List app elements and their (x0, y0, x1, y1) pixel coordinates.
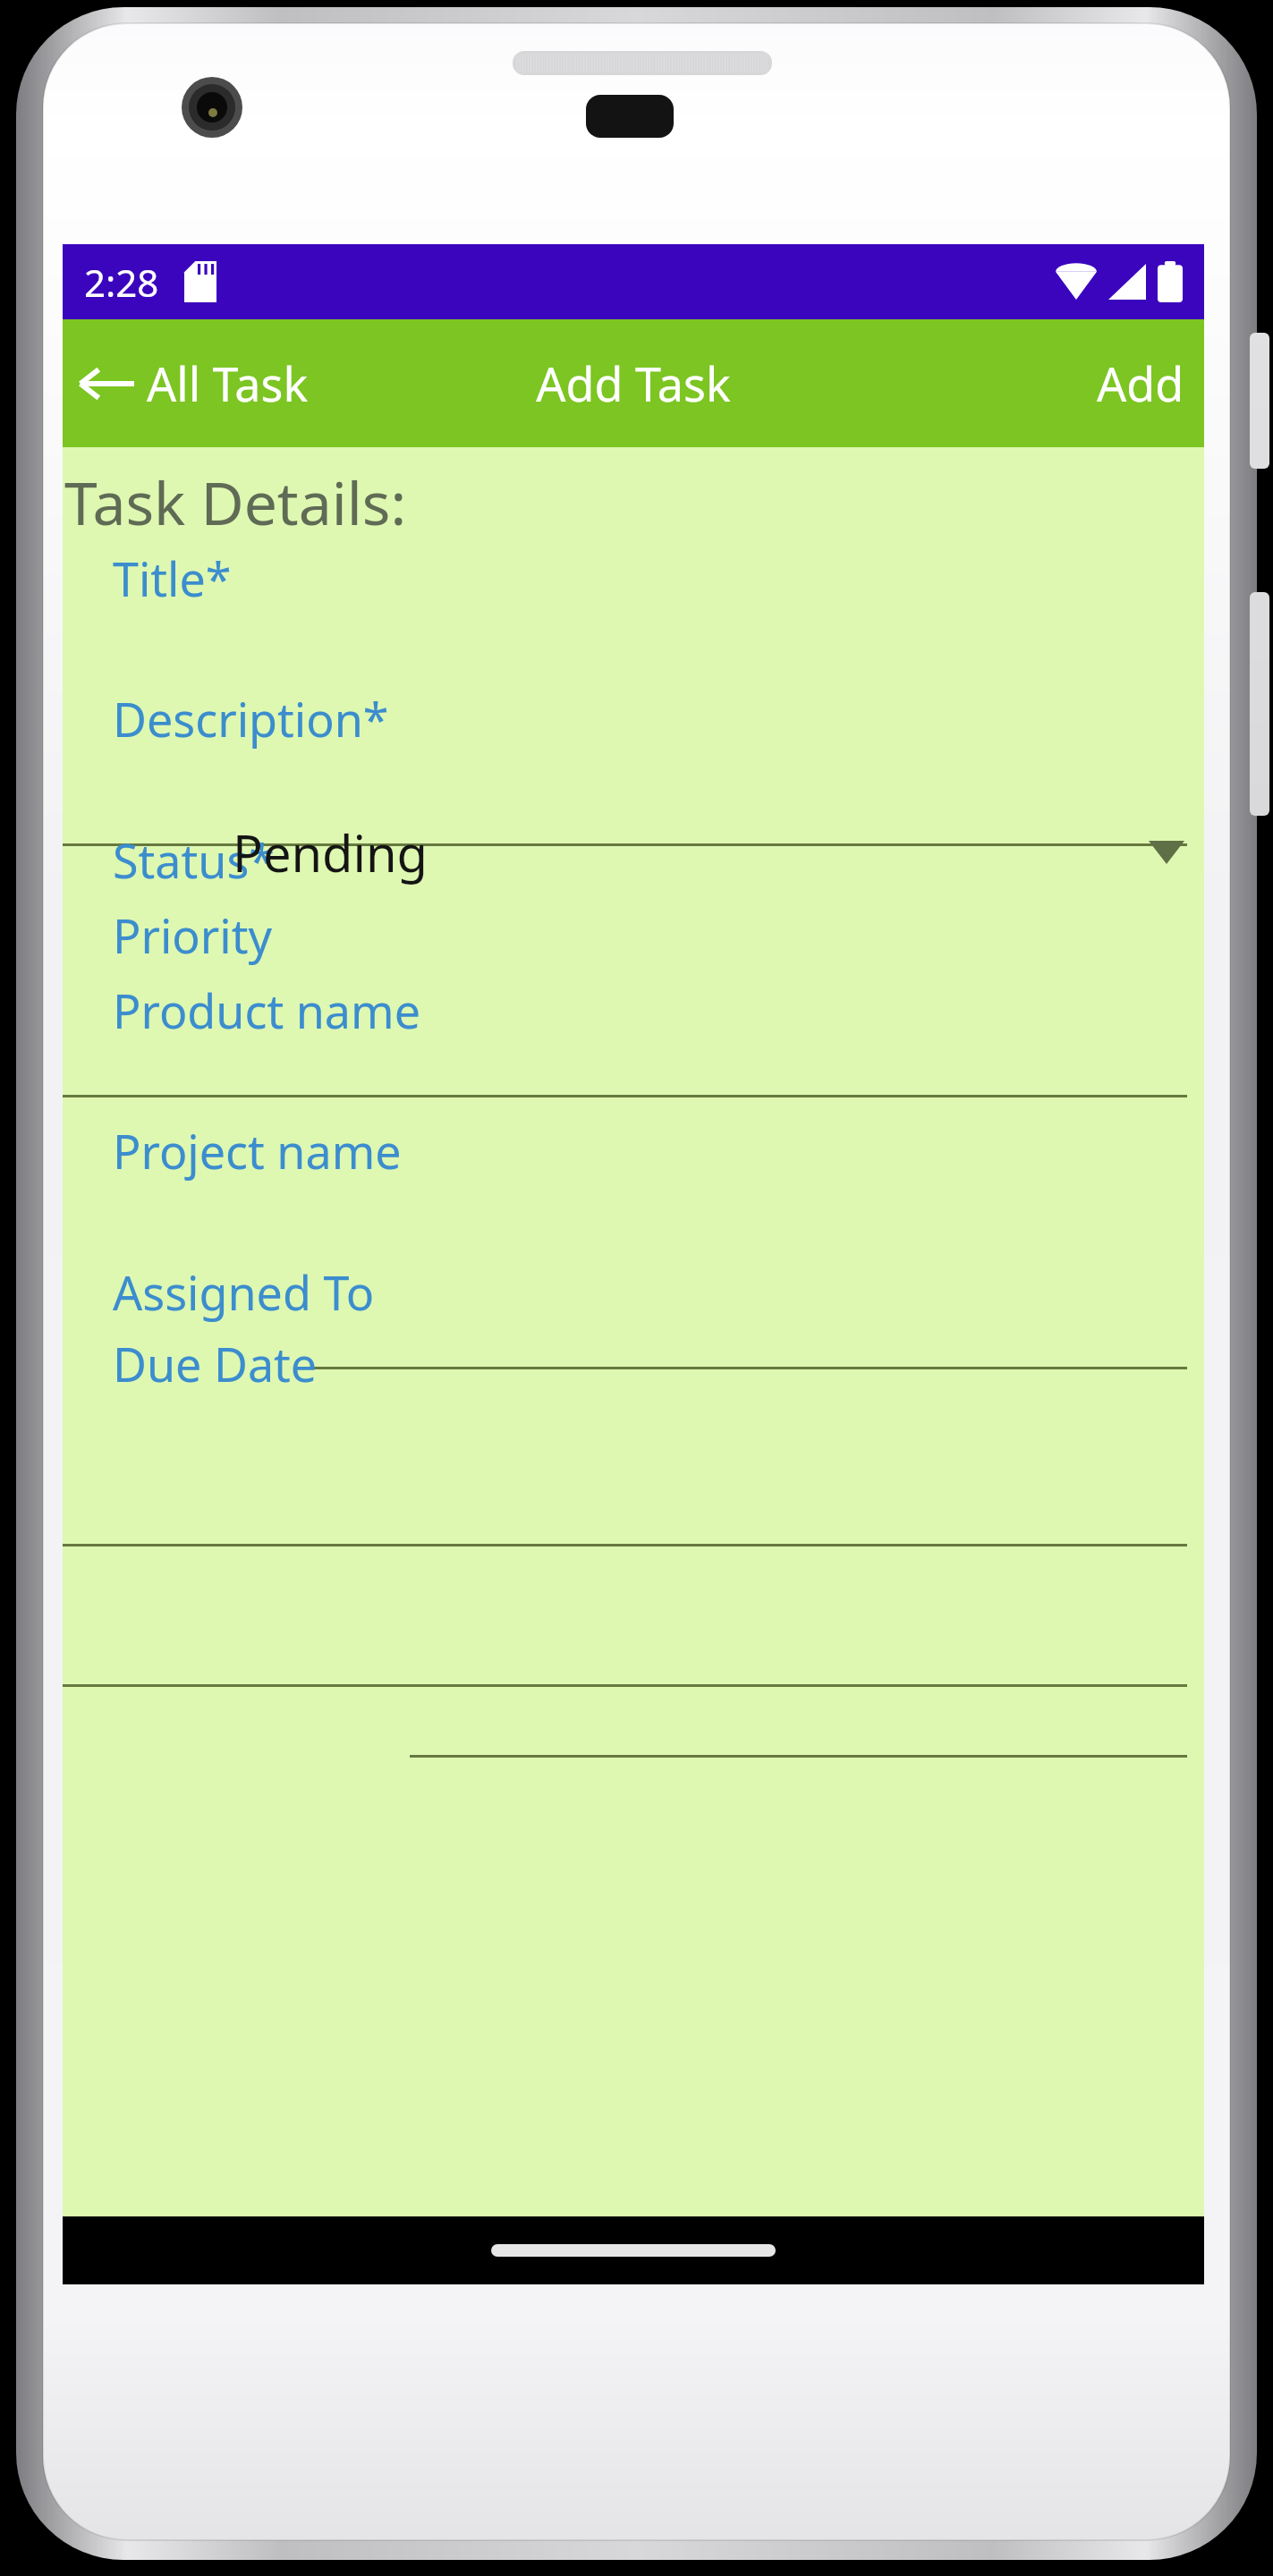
staticText: Priority (113, 903, 272, 967)
other: SD card (184, 261, 216, 302)
button[interactable]: Home (491, 2244, 776, 2257)
other: Open status dropdown (1149, 841, 1184, 864)
button[interactable]: Project name (113, 1119, 402, 1182)
button[interactable]: Pending (224, 809, 1190, 896)
button[interactable]: Assigned To (113, 1260, 375, 1324)
button[interactable]: Back to All Task (68, 339, 319, 428)
staticText: 2:28 (84, 257, 159, 308)
button[interactable]: Due Date (113, 1332, 318, 1395)
staticText: Product name (113, 979, 420, 1042)
button[interactable]: Priority (113, 903, 272, 967)
staticText: Assigned To (113, 1260, 375, 1324)
button[interactable]: Status* (113, 828, 275, 892)
staticText: Task Details: (64, 462, 407, 542)
staticText: Add (1097, 352, 1184, 415)
other: Back to All Task (79, 364, 134, 403)
staticText: Project name (113, 1119, 402, 1182)
staticText: All Task (147, 352, 309, 415)
staticText: Add Task (536, 352, 731, 415)
button[interactable]: Product name (113, 979, 420, 1042)
staticText: Title* (113, 547, 232, 610)
staticText: Description* (113, 687, 389, 750)
button[interactable]: Description* (113, 687, 389, 750)
staticText: Status* (113, 828, 275, 892)
button[interactable]: Add (1082, 339, 1199, 428)
staticText: Due Date (113, 1332, 318, 1395)
staticText: Pending (233, 818, 429, 886)
button[interactable]: Title* (113, 547, 232, 610)
